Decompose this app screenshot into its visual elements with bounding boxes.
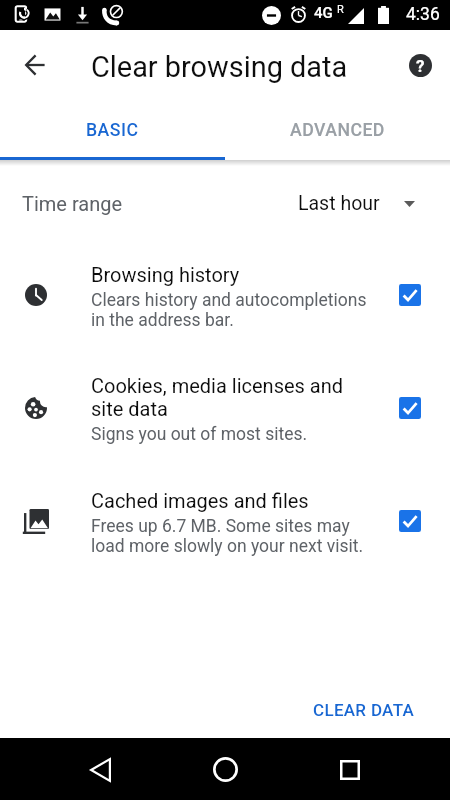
button[interactable]: CLEAR DATA	[301, 693, 427, 727]
staticText: Cookies, media licenses and site data	[91, 374, 344, 420]
button[interactable]: Browsing history	[0, 243, 450, 355]
staticText: R	[337, 3, 344, 16]
button[interactable]: Recent apps	[326, 746, 374, 794]
staticText: Frees up 6.7 MB. Some sites may load mor…	[91, 516, 364, 556]
staticText: Cached images and files	[91, 489, 309, 512]
staticText: Browsing history	[91, 263, 240, 286]
button[interactable]: Cached images and files	[0, 469, 450, 581]
button[interactable]: ADVANCED	[225, 98, 450, 159]
staticText: CLEAR DATA	[313, 700, 415, 720]
staticText: 4G	[314, 4, 333, 22]
button[interactable]: Home	[201, 745, 249, 793]
button[interactable]: Navigate up	[11, 41, 59, 89]
staticText: Time range	[22, 192, 123, 215]
staticText: 4:36	[406, 4, 440, 25]
button[interactable]: Help & feedback	[401, 46, 439, 84]
button[interactable]: Back	[76, 746, 124, 794]
button[interactable]: BASIC	[0, 98, 225, 159]
button[interactable]: Last hour	[286, 186, 426, 226]
staticText: Clears history and autocompletions in th…	[91, 290, 367, 330]
staticText: BASIC	[86, 120, 139, 141]
button[interactable]: Cookies, media licenses and site data	[0, 355, 450, 467]
staticText: Signs you out of most sites.	[91, 424, 308, 445]
staticText: Last hour	[298, 192, 380, 215]
staticText: Clear browsing data	[91, 50, 348, 84]
staticText: ?	[416, 56, 425, 76]
staticText: ADVANCED	[290, 120, 385, 141]
